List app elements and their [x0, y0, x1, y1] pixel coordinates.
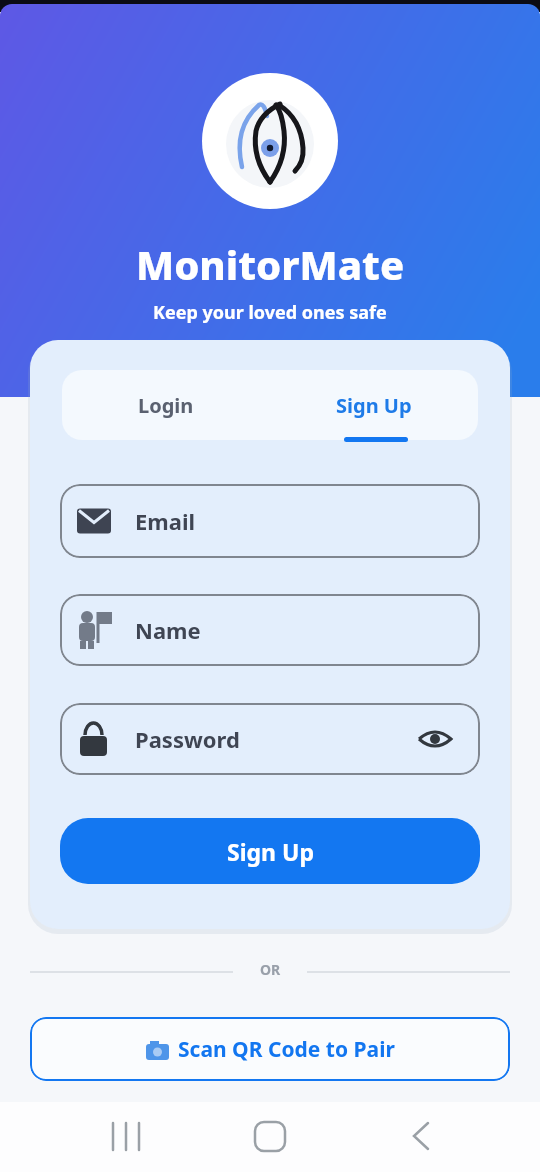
staticText: Scan QR Code to Pair	[178, 1035, 395, 1064]
button[interactable]	[391, 1102, 451, 1172]
staticText: OR	[260, 960, 281, 979]
staticText: Sign Up	[336, 392, 412, 419]
button[interactable]: Login	[62, 370, 270, 440]
button[interactable]: Email	[60, 484, 480, 558]
staticText: Sign Up	[227, 836, 314, 867]
button[interactable]: Name	[60, 594, 480, 666]
staticText: MonitorMate	[136, 237, 405, 291]
staticText: Password	[135, 724, 240, 754]
button[interactable]: Scan QR Code to Pair	[30, 1017, 510, 1081]
staticText: Name	[135, 615, 201, 645]
button[interactable]	[96, 1102, 156, 1172]
button[interactable]	[240, 1102, 300, 1172]
button[interactable]: Password	[60, 703, 480, 775]
staticText: Login	[138, 392, 194, 419]
button[interactable]: Sign Up	[270, 370, 478, 440]
staticText: Keep your loved ones safe	[153, 300, 387, 325]
staticText: Email	[135, 506, 196, 536]
button[interactable]: Sign Up	[60, 818, 480, 884]
